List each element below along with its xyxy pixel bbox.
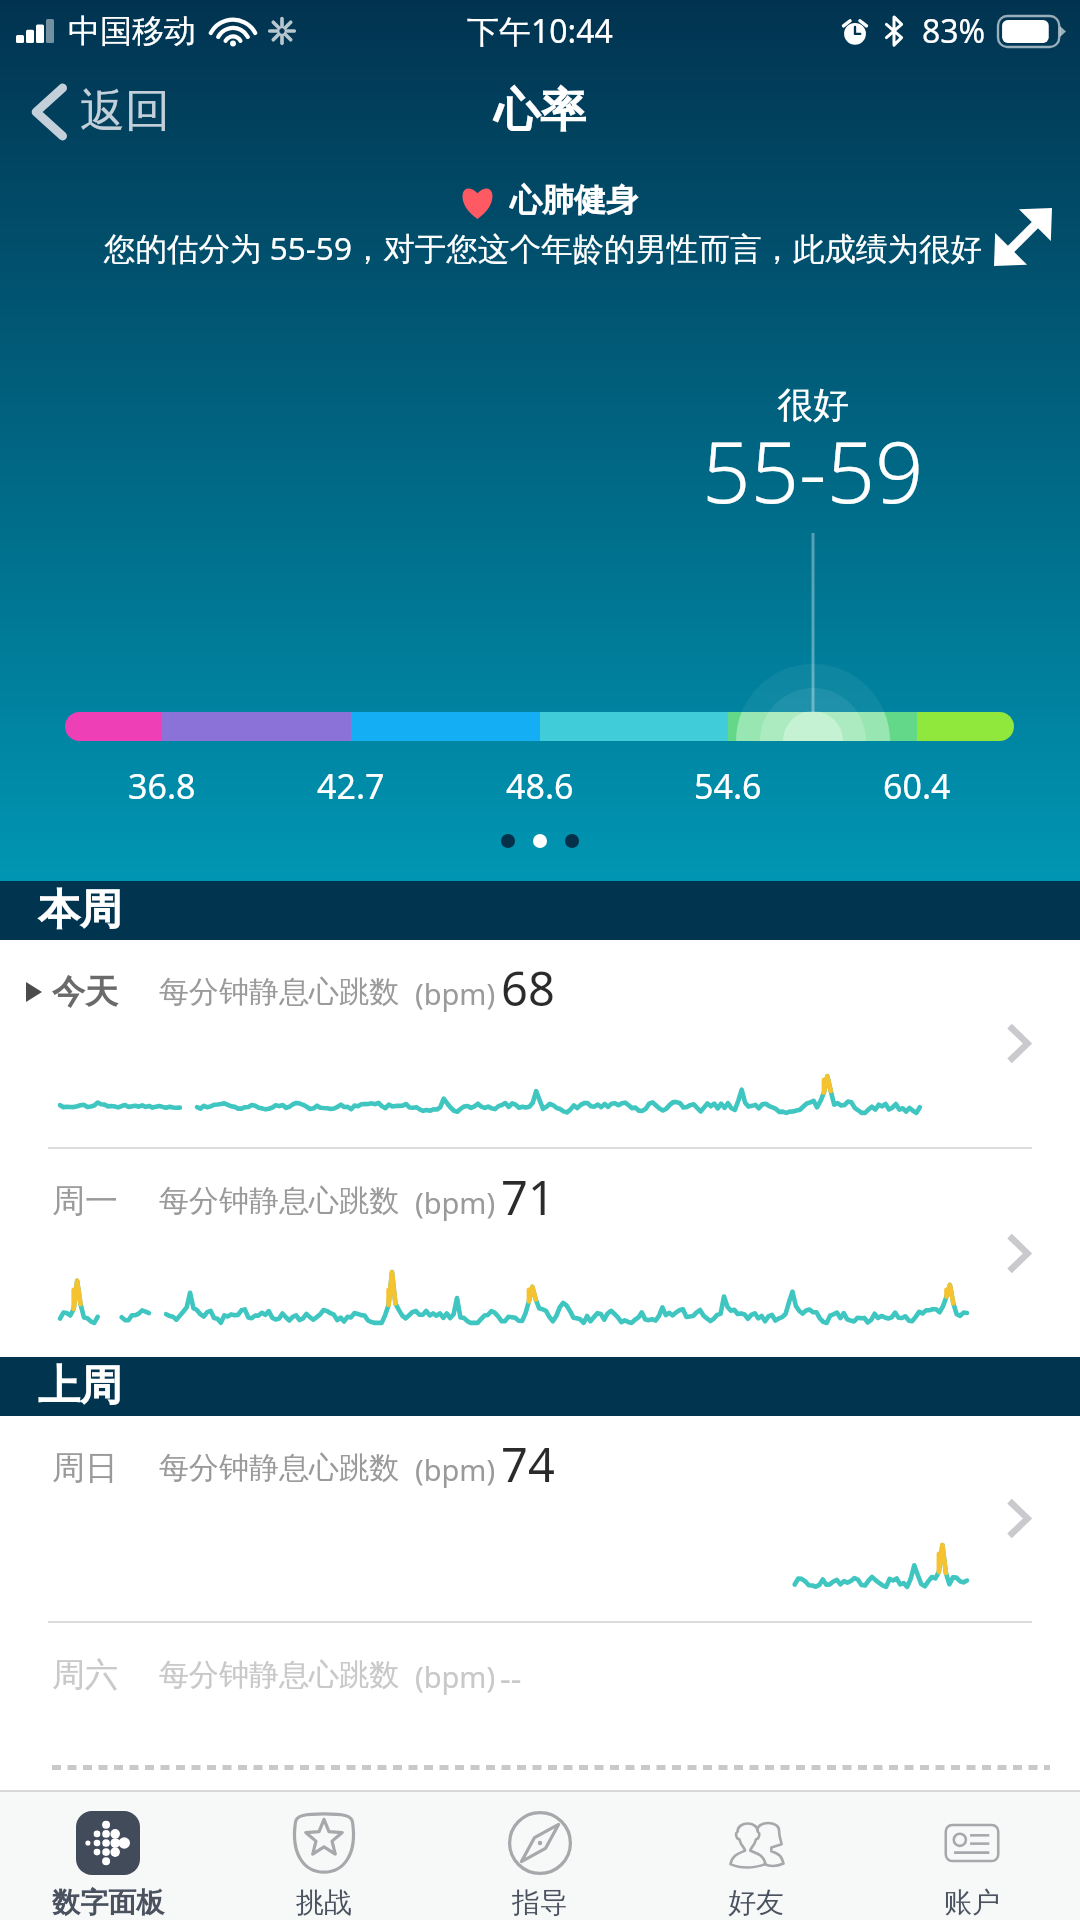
button[interactable]: Page 3 [565, 834, 579, 848]
staticText: 54.6 [694, 763, 762, 809]
staticText: 好友 [728, 1885, 784, 1920]
button[interactable]: 周一 [0, 1149, 1080, 1357]
staticText: (bpm) [415, 974, 496, 1013]
staticText: 周日 [52, 1447, 118, 1489]
button[interactable]: Page 2 [533, 834, 547, 848]
staticText: 挑战 [296, 1885, 352, 1920]
staticText: 每分钟静息心跳数 [159, 973, 399, 1011]
button[interactable]: 返回 [22, 75, 180, 148]
button[interactable]: 周日 [0, 1416, 1080, 1621]
staticText: 心肺健身 [510, 180, 638, 220]
staticText: 上周 [38, 1360, 122, 1413]
button[interactable]: 今天 [0, 940, 1080, 1147]
staticText: 55-59 [702, 412, 924, 528]
button[interactable]: 好友 [648, 1792, 864, 1920]
button[interactable]: Page 1 [501, 834, 515, 848]
staticText: 48.6 [506, 763, 574, 809]
staticText: 您的估分为 55-59，对于您这个年龄的男性而言，此成绩为很好 [104, 226, 982, 269]
button[interactable]: Expand chart [994, 208, 1052, 266]
button[interactable]: 账户 [864, 1792, 1080, 1920]
staticText: 60.4 [883, 763, 951, 809]
button[interactable]: 周六 [0, 1623, 1080, 1792]
button[interactable]: 挑战 [216, 1792, 432, 1920]
staticText: (bpm) [415, 1183, 496, 1222]
button[interactable]: 指导 [432, 1792, 648, 1920]
staticText: 每分钟静息心跳数 [159, 1182, 399, 1220]
staticText: 36.8 [128, 763, 196, 809]
staticText: 周一 [52, 1180, 118, 1222]
staticText: 很好 [777, 382, 849, 427]
staticText: 42.7 [317, 763, 385, 809]
staticText: 指导 [512, 1885, 568, 1920]
staticText: 本周 [38, 884, 122, 937]
staticText: 今天 [52, 971, 118, 1013]
staticText: (bpm) [415, 1657, 496, 1696]
staticText: 71 [501, 1165, 555, 1229]
staticText: 账户 [944, 1885, 1000, 1920]
staticText: 周六 [52, 1654, 118, 1696]
staticText: 每分钟静息心跳数 [159, 1656, 399, 1694]
staticText: 返回 [80, 83, 170, 140]
staticText: -- [500, 1656, 522, 1701]
staticText: 数字面板 [52, 1885, 164, 1920]
staticText: 83% [922, 9, 986, 53]
staticText: 74 [501, 1432, 555, 1496]
staticText: (bpm) [415, 1450, 496, 1489]
staticText: 每分钟静息心跳数 [159, 1449, 399, 1487]
staticText: 中国移动 [68, 11, 196, 51]
staticText: 下午10:44 [467, 9, 613, 53]
button[interactable]: 数字面板 [0, 1792, 216, 1920]
staticText: 心率 [494, 82, 586, 140]
staticText: 68 [501, 956, 555, 1020]
